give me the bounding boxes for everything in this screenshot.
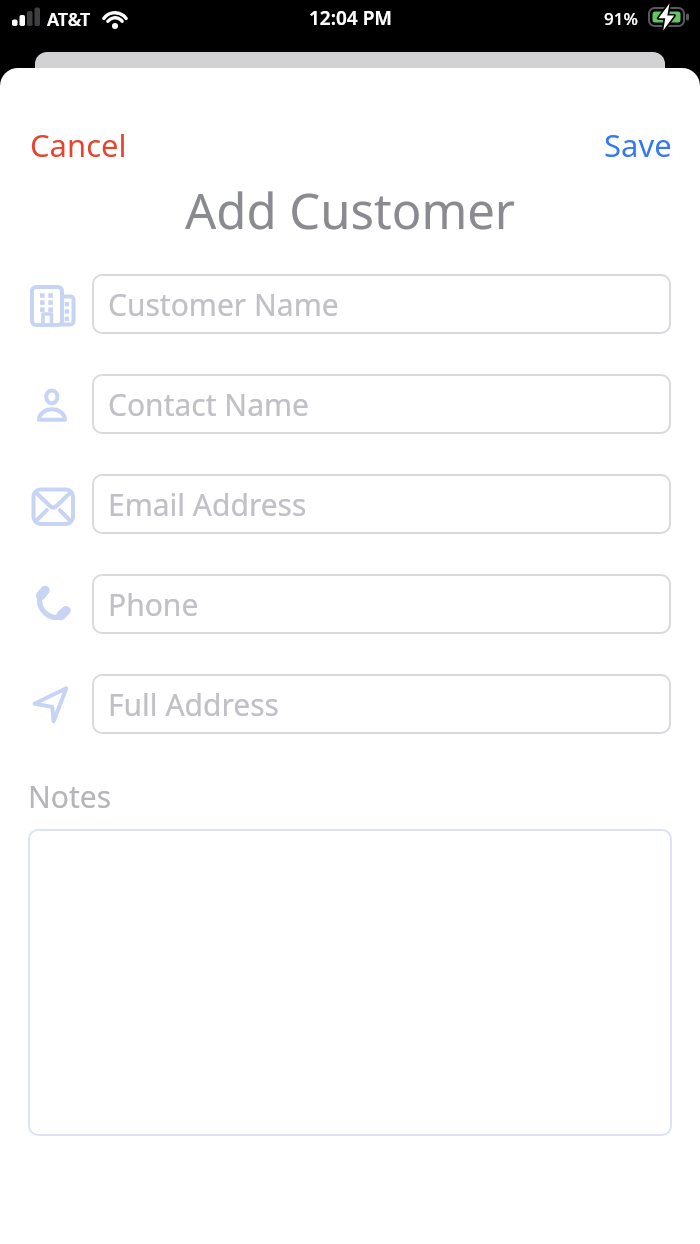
staticText: Contact Name (108, 384, 309, 425)
button[interactable]: Cancel (30, 124, 127, 162)
button[interactable]: Email Address (92, 474, 671, 534)
staticText: 91% (604, 7, 638, 30)
staticText: Cancel (30, 124, 127, 162)
button[interactable] (28, 829, 672, 1136)
staticText: AT&T (47, 7, 91, 32)
staticText: Save (604, 124, 672, 162)
staticText: Email Address (108, 484, 307, 525)
button[interactable]: Contact Name (92, 374, 671, 434)
staticText: Add Customer (185, 177, 516, 233)
staticText: Full Address (108, 684, 279, 725)
button[interactable]: Full Address (92, 674, 671, 734)
staticText: Notes (28, 776, 112, 817)
button[interactable]: Save (604, 124, 672, 162)
button[interactable]: Phone (92, 574, 671, 634)
staticText: Phone (108, 584, 199, 625)
button[interactable]: Customer Name (92, 274, 671, 334)
staticText: Customer Name (108, 284, 339, 325)
staticText: 12:04 PM (309, 5, 392, 31)
